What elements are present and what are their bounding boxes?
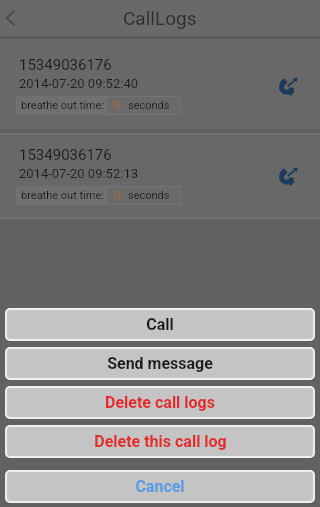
button[interactable]: Call back bbox=[275, 163, 301, 189]
staticText: Cancel bbox=[135, 477, 185, 496]
staticText: 2014-07-20 09:52:13 bbox=[19, 166, 138, 181]
staticText: seconds bbox=[128, 99, 170, 112]
staticText: 0 bbox=[114, 189, 121, 202]
staticText: seconds bbox=[128, 189, 170, 202]
button[interactable]: Delete call logs bbox=[5, 386, 315, 419]
button[interactable]: 15349036176 bbox=[0, 39, 320, 129]
button[interactable]: Send message bbox=[5, 347, 315, 380]
staticText: 2014-07-20 09:52:40 bbox=[19, 76, 138, 91]
staticText: Call bbox=[146, 315, 174, 334]
staticText: 15349036176 bbox=[19, 146, 112, 164]
button[interactable]: Back bbox=[0, 0, 32, 36]
staticText: CallLogs bbox=[123, 7, 197, 29]
button[interactable]: Call back bbox=[275, 73, 301, 99]
staticText: Delete this call log bbox=[94, 432, 227, 451]
button[interactable]: Call bbox=[5, 308, 315, 341]
button[interactable]: Delete this call log bbox=[5, 425, 315, 458]
staticText: breathe out time: bbox=[21, 99, 104, 112]
staticText: 0 bbox=[114, 99, 121, 112]
button[interactable]: Cancel bbox=[5, 470, 315, 503]
staticText: 15349036176 bbox=[19, 56, 112, 74]
staticText: breathe out time: bbox=[21, 189, 104, 202]
staticText: Delete call logs bbox=[105, 393, 215, 412]
staticText: Send message bbox=[107, 354, 213, 373]
button[interactable]: 15349036176 bbox=[0, 129, 320, 219]
